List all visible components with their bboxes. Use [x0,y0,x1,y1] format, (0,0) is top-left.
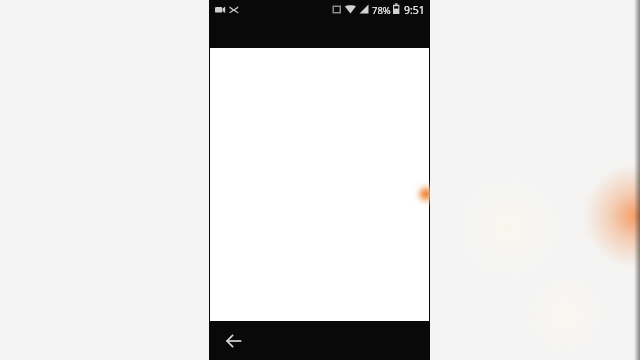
button[interactable]: Back [216,324,252,358]
button[interactable] [210,48,430,321]
